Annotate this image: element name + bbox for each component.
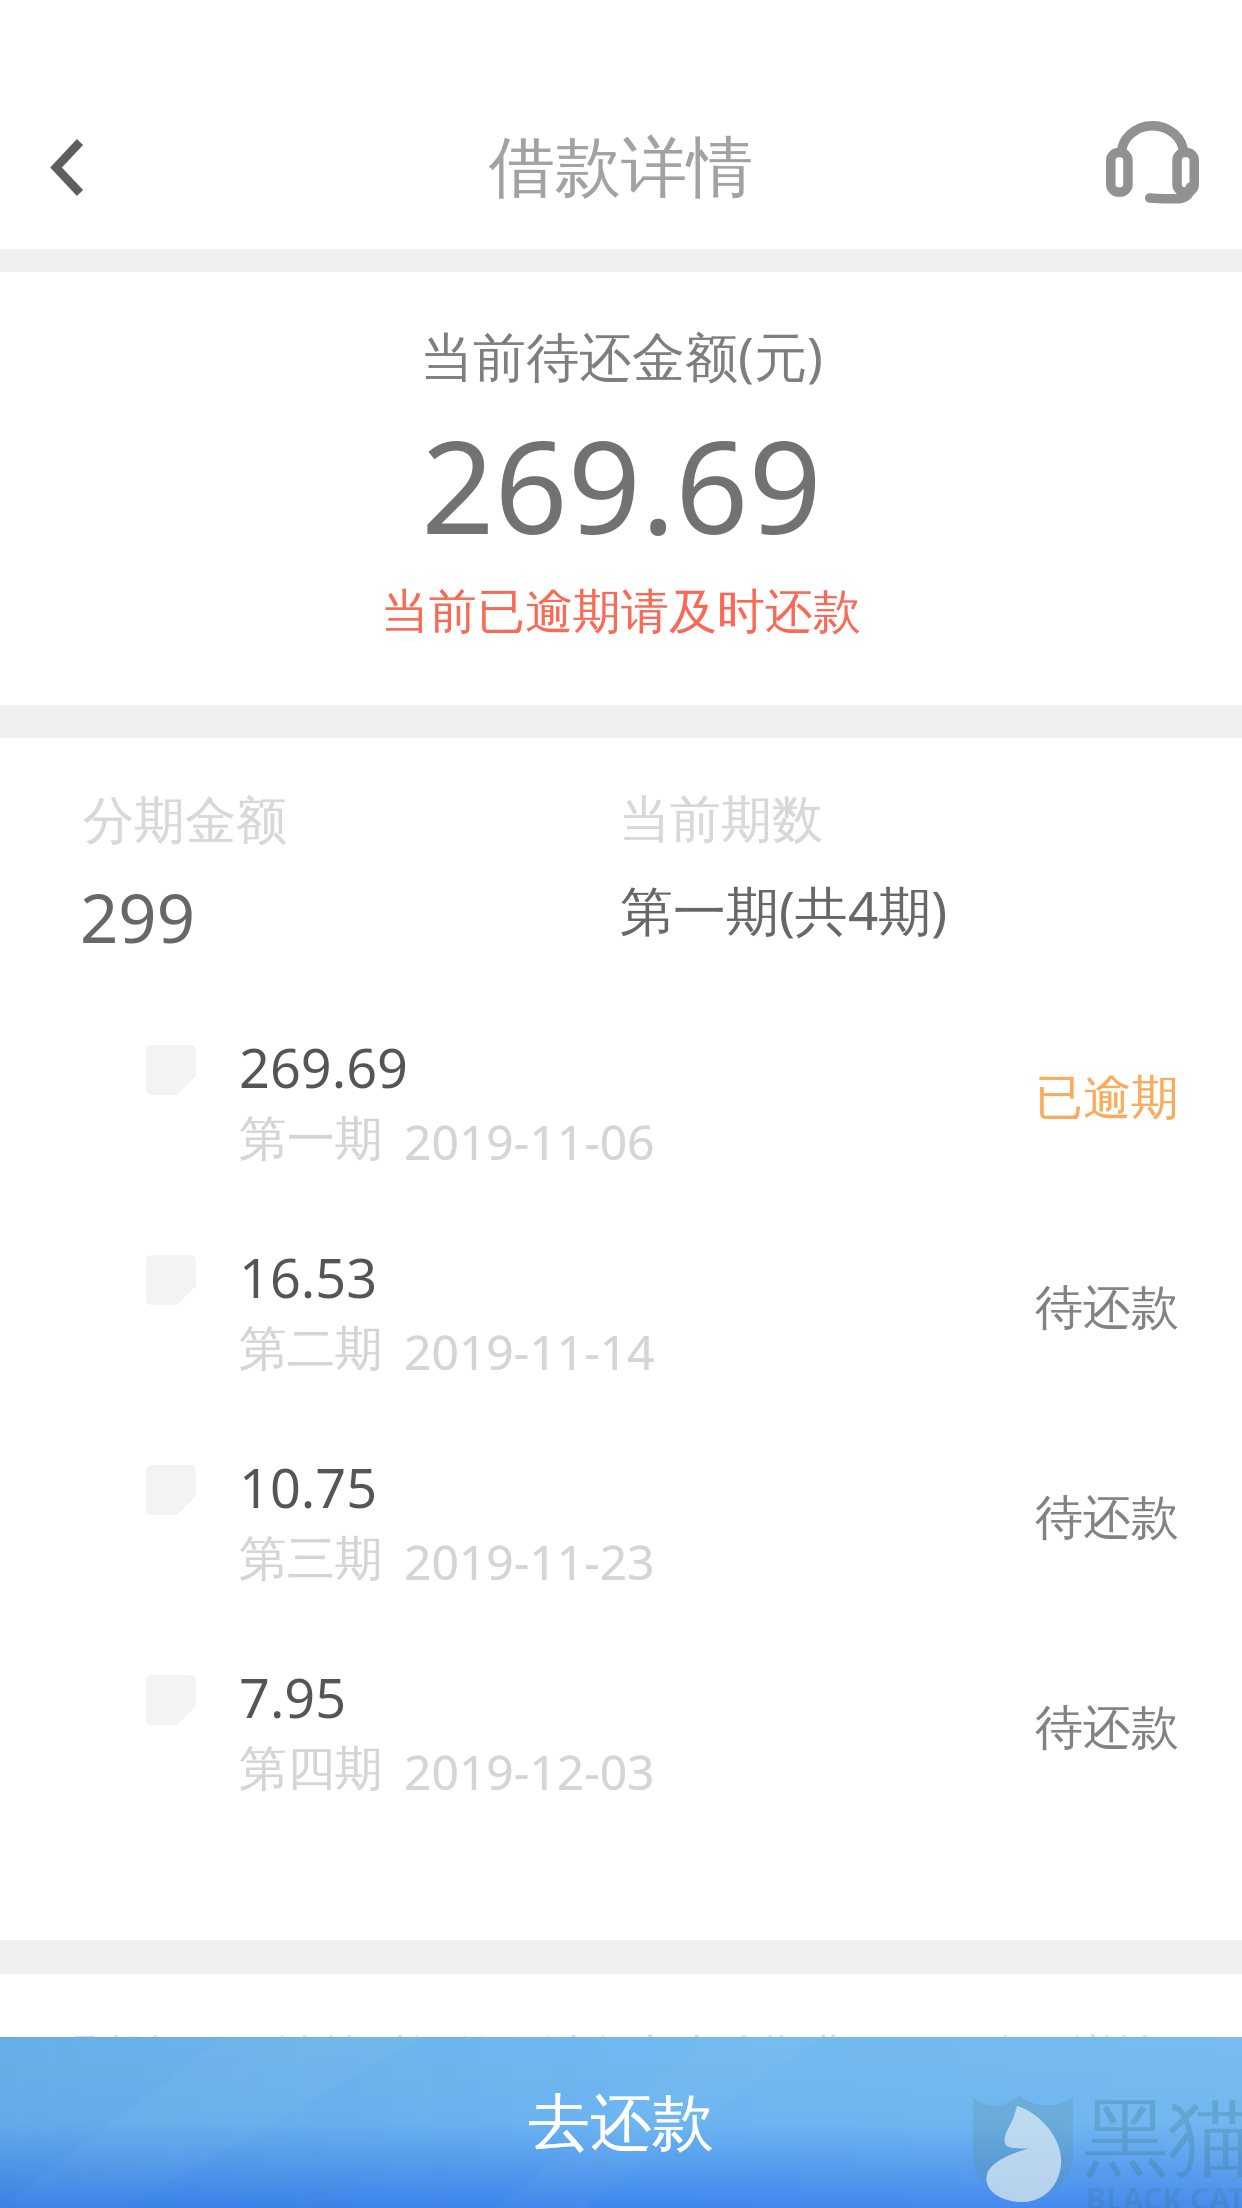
staticText: 当前已逾期请及时还款 [381, 582, 861, 642]
staticText: 当前待还金额(元) [420, 319, 823, 391]
staticText: 10.75 [239, 1450, 378, 1524]
button[interactable]: Customer service [1097, 105, 1207, 215]
staticText: 借款详情 [489, 126, 753, 209]
staticText: 已逾期 [1035, 1068, 1179, 1128]
staticText: 2019-11-14 [404, 1319, 655, 1384]
staticText: 合同详情 [985, 2029, 1161, 2084]
staticText: 分期金额 [83, 789, 287, 853]
staticText: 待还款 [1035, 1488, 1179, 1548]
staticText: 269.69 [239, 1030, 408, 1104]
button[interactable]: 16.53 [0, 1222, 1242, 1432]
staticText: 待还款 [1035, 1698, 1179, 1758]
staticText: 当前期数 [619, 788, 823, 852]
button[interactable]: 合同详情 [985, 2029, 1161, 2084]
staticText: 2019-11-06 [404, 1109, 655, 1174]
staticText: 2019-12-03 [404, 1739, 655, 1804]
button[interactable]: 7.95 [0, 1642, 1242, 1852]
staticText: 299 [80, 871, 195, 962]
staticText: 第四期 [239, 1739, 383, 1799]
staticText: BLACK CAT [1086, 2178, 1242, 2208]
button[interactable]: 269.69 [0, 1012, 1242, 1222]
button[interactable]: 去还款 [0, 2037, 1242, 2208]
staticText: 待还款 [1035, 1278, 1179, 1338]
staticText: 第三期 [239, 1529, 383, 1589]
staticText: 269.69 [421, 397, 822, 571]
button[interactable]: 10.75 [0, 1432, 1242, 1642]
staticText: 温馨提示：请按时还款，避免产生逾期费用 [58, 2029, 894, 2084]
staticText: 黑猫 [1083, 2085, 1242, 2192]
button[interactable]: Back [18, 117, 118, 217]
staticText: 第二期 [239, 1319, 383, 1379]
staticText: 2019-11-23 [404, 1529, 655, 1594]
staticText: 7.95 [239, 1660, 347, 1734]
staticText: 16.53 [239, 1240, 378, 1314]
staticText: 去还款 [528, 2084, 714, 2162]
staticText: 第一期(共4期) [620, 873, 948, 945]
staticText: 第一期 [239, 1109, 383, 1169]
